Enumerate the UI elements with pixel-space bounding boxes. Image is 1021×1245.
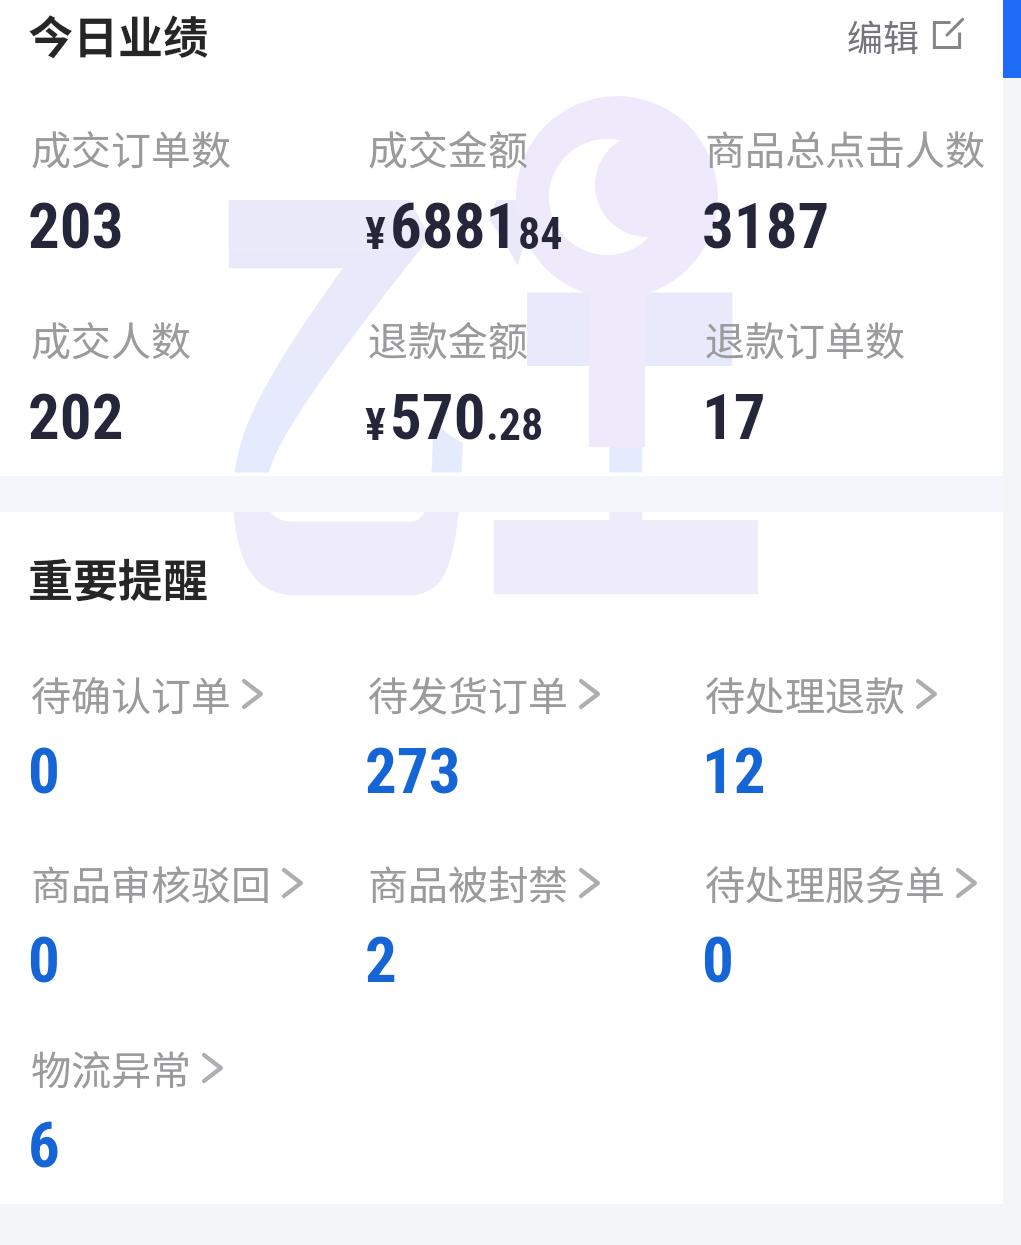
staticText: 退款订单数 — [705, 310, 905, 368]
staticText: 0 — [28, 924, 60, 998]
staticText: 0 — [702, 924, 734, 998]
staticText: 12 — [702, 735, 766, 809]
staticText: 3187 — [702, 190, 830, 264]
staticText: 6881 — [390, 190, 518, 264]
staticText: 84 — [518, 208, 563, 260]
staticText: 物流异常 — [31, 1039, 191, 1097]
staticText: 待处理服务单 — [705, 854, 945, 912]
staticText: 570 — [390, 381, 486, 455]
button[interactable]: 物流异常 — [28, 1039, 226, 1183]
staticText: 203 — [28, 190, 124, 264]
staticText: 待发货订单 — [368, 665, 568, 723]
staticText: 2 — [365, 924, 397, 998]
staticText: 成交人数 — [31, 310, 191, 368]
staticText: 成交金额 — [368, 119, 528, 177]
staticText: 今日业绩 — [28, 2, 209, 67]
staticText: 待处理退款 — [705, 665, 905, 723]
button[interactable]: 商品审核驳回 — [28, 854, 306, 998]
staticText: 273 — [365, 735, 461, 809]
button[interactable]: 待处理服务单 — [702, 854, 980, 998]
button[interactable]: 待发货订单 — [365, 665, 603, 809]
staticText: ¥ — [365, 399, 386, 451]
button[interactable]: 待处理退款 — [702, 665, 940, 809]
button[interactable]: 商品被封禁 — [365, 854, 603, 998]
staticText: ¥ — [365, 208, 386, 260]
staticText: 成交订单数 — [31, 119, 231, 177]
staticText: 商品被封禁 — [368, 854, 568, 912]
staticText: 商品总点击人数 — [705, 119, 985, 177]
staticText: 艺生 — [185, 0, 772, 473]
staticText: 艺生 — [185, 512, 772, 758]
staticText: 待确认订单 — [31, 665, 231, 723]
staticText: 6 — [28, 1109, 60, 1183]
staticText: 0 — [28, 735, 60, 809]
staticText: 商品审核驳回 — [31, 854, 271, 912]
staticText: 重要提醒 — [28, 545, 209, 610]
staticText: 17 — [702, 381, 766, 455]
staticText: 202 — [28, 381, 124, 455]
other: Edit — [932, 20, 962, 50]
staticText: 编辑 — [847, 9, 920, 61]
staticText: 退款金额 — [368, 310, 528, 368]
button[interactable]: 待确认订单 — [28, 665, 266, 809]
button[interactable]: 编辑 — [847, 9, 962, 61]
staticText: .28 — [486, 399, 544, 451]
